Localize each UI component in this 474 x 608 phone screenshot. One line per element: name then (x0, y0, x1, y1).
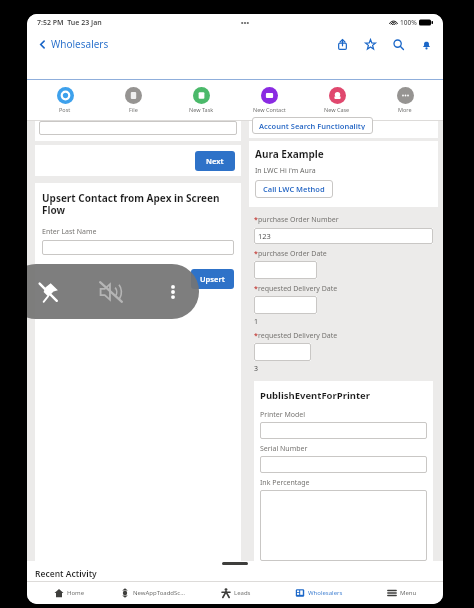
staticText: Wholesalers (51, 37, 109, 51)
staticText: 7:52 PM Tue 23 Jan (37, 18, 102, 28)
button[interactable]: Unpin (35, 279, 61, 305)
button[interactable]: Account Search Functionality (252, 117, 373, 134)
button[interactable]: Post (31, 80, 99, 120)
button[interactable]: Call LWC Method (255, 180, 333, 198)
staticText: New Task (189, 106, 214, 113)
button[interactable]: File (99, 80, 167, 120)
button[interactable]: New Case (303, 80, 371, 120)
button[interactable]: Leads (194, 582, 277, 604)
staticText: * (254, 284, 258, 294)
staticText: Printer Model (260, 410, 306, 420)
staticText: Account Search Functionality (259, 121, 366, 130)
staticText: Menu (400, 589, 417, 597)
staticText: 1 (254, 317, 259, 327)
staticText: Aura Example (255, 147, 324, 161)
staticText: Post (59, 106, 71, 113)
staticText: Call LWC Method (263, 184, 325, 194)
staticText: New Contact (253, 106, 286, 113)
staticText: * (254, 249, 258, 259)
button[interactable]: Notifications (418, 36, 434, 52)
staticText: Recent Activity (35, 568, 97, 580)
staticText: Upsert (200, 274, 225, 284)
button[interactable]: More options (161, 280, 185, 304)
staticText: Enter Last Name (42, 227, 97, 237)
button[interactable]: New Contact (235, 80, 303, 120)
staticText: More (398, 106, 412, 113)
staticText: Home (67, 589, 85, 597)
staticText: Ink Percentage (260, 478, 310, 488)
staticText: PublishEventForPrinter (260, 389, 371, 402)
staticText: Next (206, 156, 224, 166)
staticText: purchase Order Number (258, 215, 339, 225)
staticText: 100% (400, 18, 417, 27)
staticText: NewAppToaddScreenF... (133, 589, 185, 597)
button[interactable]: More (371, 80, 439, 120)
staticText: 3 (254, 364, 259, 374)
button[interactable]: Mute (96, 277, 126, 307)
button[interactable]: Share (334, 36, 350, 52)
staticText: * (254, 215, 258, 225)
button[interactable]: Home (27, 582, 111, 604)
other: Back (38, 40, 47, 49)
button[interactable]: Favorite (362, 36, 378, 52)
staticText: Upsert Contact from Apex in Screen Flow (42, 191, 234, 217)
staticText: requested Delivery Date (258, 331, 338, 341)
staticText: Wholesalers (308, 589, 343, 597)
button[interactable]: Back (36, 35, 111, 53)
button[interactable]: Wholesalers (277, 582, 360, 604)
staticText: requested Delivery Date (258, 284, 338, 294)
staticText: Serial Number (260, 444, 308, 454)
staticText: * (254, 331, 258, 341)
staticText: File (129, 106, 138, 113)
button[interactable]: Next (195, 151, 235, 171)
staticText: 123 (258, 231, 271, 241)
staticText: Leads (234, 589, 251, 597)
button[interactable]: Upsert (191, 269, 234, 289)
staticText: purchase Order Date (258, 249, 327, 259)
button[interactable]: NewAppToaddScreenF... (111, 582, 194, 604)
staticText: New Case (324, 106, 350, 113)
staticText: In LWC Hi i'm Aura (255, 166, 316, 176)
button[interactable]: Menu (360, 582, 443, 604)
button[interactable]: New Task (167, 80, 235, 120)
button[interactable]: Search (390, 36, 406, 52)
